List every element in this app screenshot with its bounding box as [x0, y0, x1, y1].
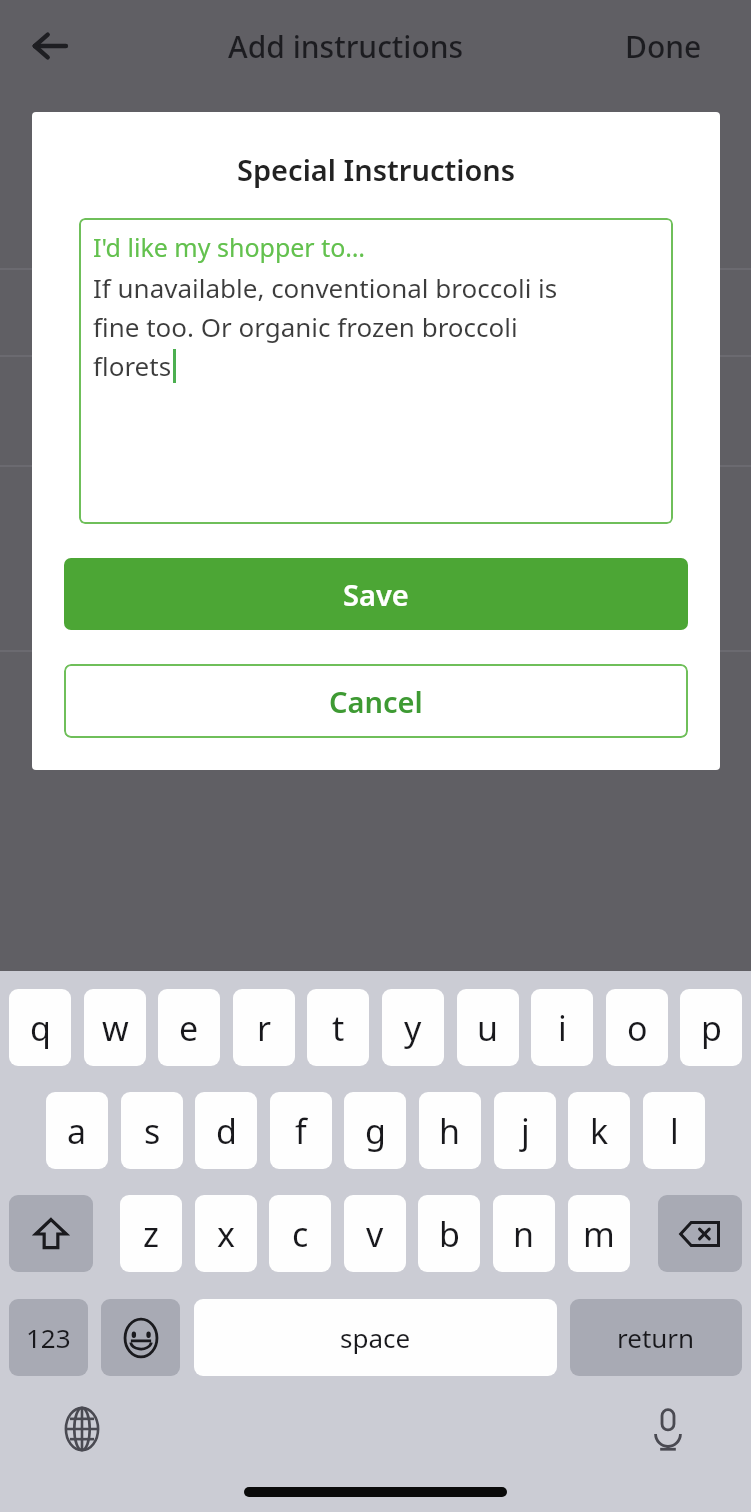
button[interactable]: k: [568, 1092, 630, 1169]
staticText: d: [216, 1108, 237, 1154]
staticText: i: [558, 1005, 567, 1051]
button[interactable]: Back: [0, 0, 100, 92]
button[interactable]: Cancel: [64, 664, 688, 738]
staticText: q: [30, 1005, 51, 1051]
button[interactable]: space: [194, 1299, 557, 1376]
staticText: p: [701, 1005, 722, 1051]
staticText: e: [179, 1005, 199, 1051]
staticText: Done: [625, 26, 702, 67]
button[interactable]: g: [344, 1092, 406, 1169]
staticText: 123: [26, 1320, 71, 1355]
staticText: space: [340, 1320, 411, 1355]
button[interactable]: x: [195, 1195, 257, 1272]
button[interactable]: i: [531, 989, 593, 1066]
staticText: a: [67, 1108, 87, 1154]
staticText: j: [521, 1108, 530, 1154]
staticText: h: [439, 1108, 461, 1154]
staticText: f: [295, 1108, 307, 1154]
button[interactable]: Voice input: [638, 1399, 698, 1459]
staticText: m: [583, 1211, 615, 1257]
staticText: I'd like my shopper to…: [93, 230, 366, 264]
button[interactable]: y: [382, 989, 444, 1066]
staticText: c: [292, 1211, 309, 1257]
button[interactable]: p: [680, 989, 742, 1066]
button[interactable]: z: [120, 1195, 182, 1272]
staticText: y: [404, 1005, 422, 1051]
button[interactable]: t: [307, 989, 369, 1066]
button[interactable]: s: [121, 1092, 183, 1169]
button[interactable]: o: [606, 989, 668, 1066]
button[interactable]: Done: [591, 0, 751, 92]
button[interactable]: j: [494, 1092, 556, 1169]
button[interactable]: Backspace: [658, 1195, 742, 1272]
staticText: o: [627, 1005, 648, 1051]
button[interactable]: Change keyboard language: [52, 1399, 112, 1459]
button[interactable]: a: [46, 1092, 108, 1169]
button[interactable]: 123: [9, 1299, 88, 1376]
staticText: Cancel: [329, 682, 423, 721]
button[interactable]: Emoji: [101, 1299, 180, 1376]
staticText: r: [257, 1005, 272, 1051]
button[interactable]: q: [9, 989, 71, 1066]
button[interactable]: v: [344, 1195, 406, 1272]
staticText: z: [143, 1211, 159, 1257]
button[interactable]: u: [457, 989, 519, 1066]
staticText: Add instructions: [228, 26, 464, 67]
staticText: Save: [343, 575, 409, 614]
button[interactable]: d: [195, 1092, 257, 1169]
staticText: l: [670, 1108, 679, 1154]
staticText: If unavailable, conventional broccoli is: [93, 270, 558, 305]
staticText: v: [366, 1211, 384, 1257]
button[interactable]: e: [158, 989, 220, 1066]
staticText: Special Instructions: [237, 150, 516, 189]
button[interactable]: I'd like my shopper to…: [79, 218, 673, 524]
button[interactable]: m: [568, 1195, 630, 1272]
button[interactable]: b: [418, 1195, 480, 1272]
staticText: w: [102, 1005, 129, 1051]
button[interactable]: Shift: [9, 1195, 93, 1272]
staticText: florets: [93, 348, 172, 383]
staticText: g: [365, 1108, 386, 1154]
button[interactable]: w: [84, 989, 146, 1066]
button[interactable]: h: [419, 1092, 481, 1169]
staticText: u: [477, 1005, 499, 1051]
staticText: s: [144, 1108, 161, 1154]
button[interactable]: r: [233, 989, 295, 1066]
staticText: k: [590, 1108, 609, 1154]
button[interactable]: return: [570, 1299, 742, 1376]
button[interactable]: c: [269, 1195, 331, 1272]
staticText: fine too. Or organic frozen broccoli: [93, 309, 518, 344]
button[interactable]: l: [643, 1092, 705, 1169]
button[interactable]: f: [270, 1092, 332, 1169]
staticText: return: [617, 1320, 695, 1355]
staticText: n: [513, 1211, 535, 1257]
button[interactable]: n: [493, 1195, 555, 1272]
button[interactable]: Save: [64, 558, 688, 630]
staticText: b: [439, 1211, 460, 1257]
staticText: x: [217, 1211, 235, 1257]
staticText: t: [332, 1005, 345, 1051]
